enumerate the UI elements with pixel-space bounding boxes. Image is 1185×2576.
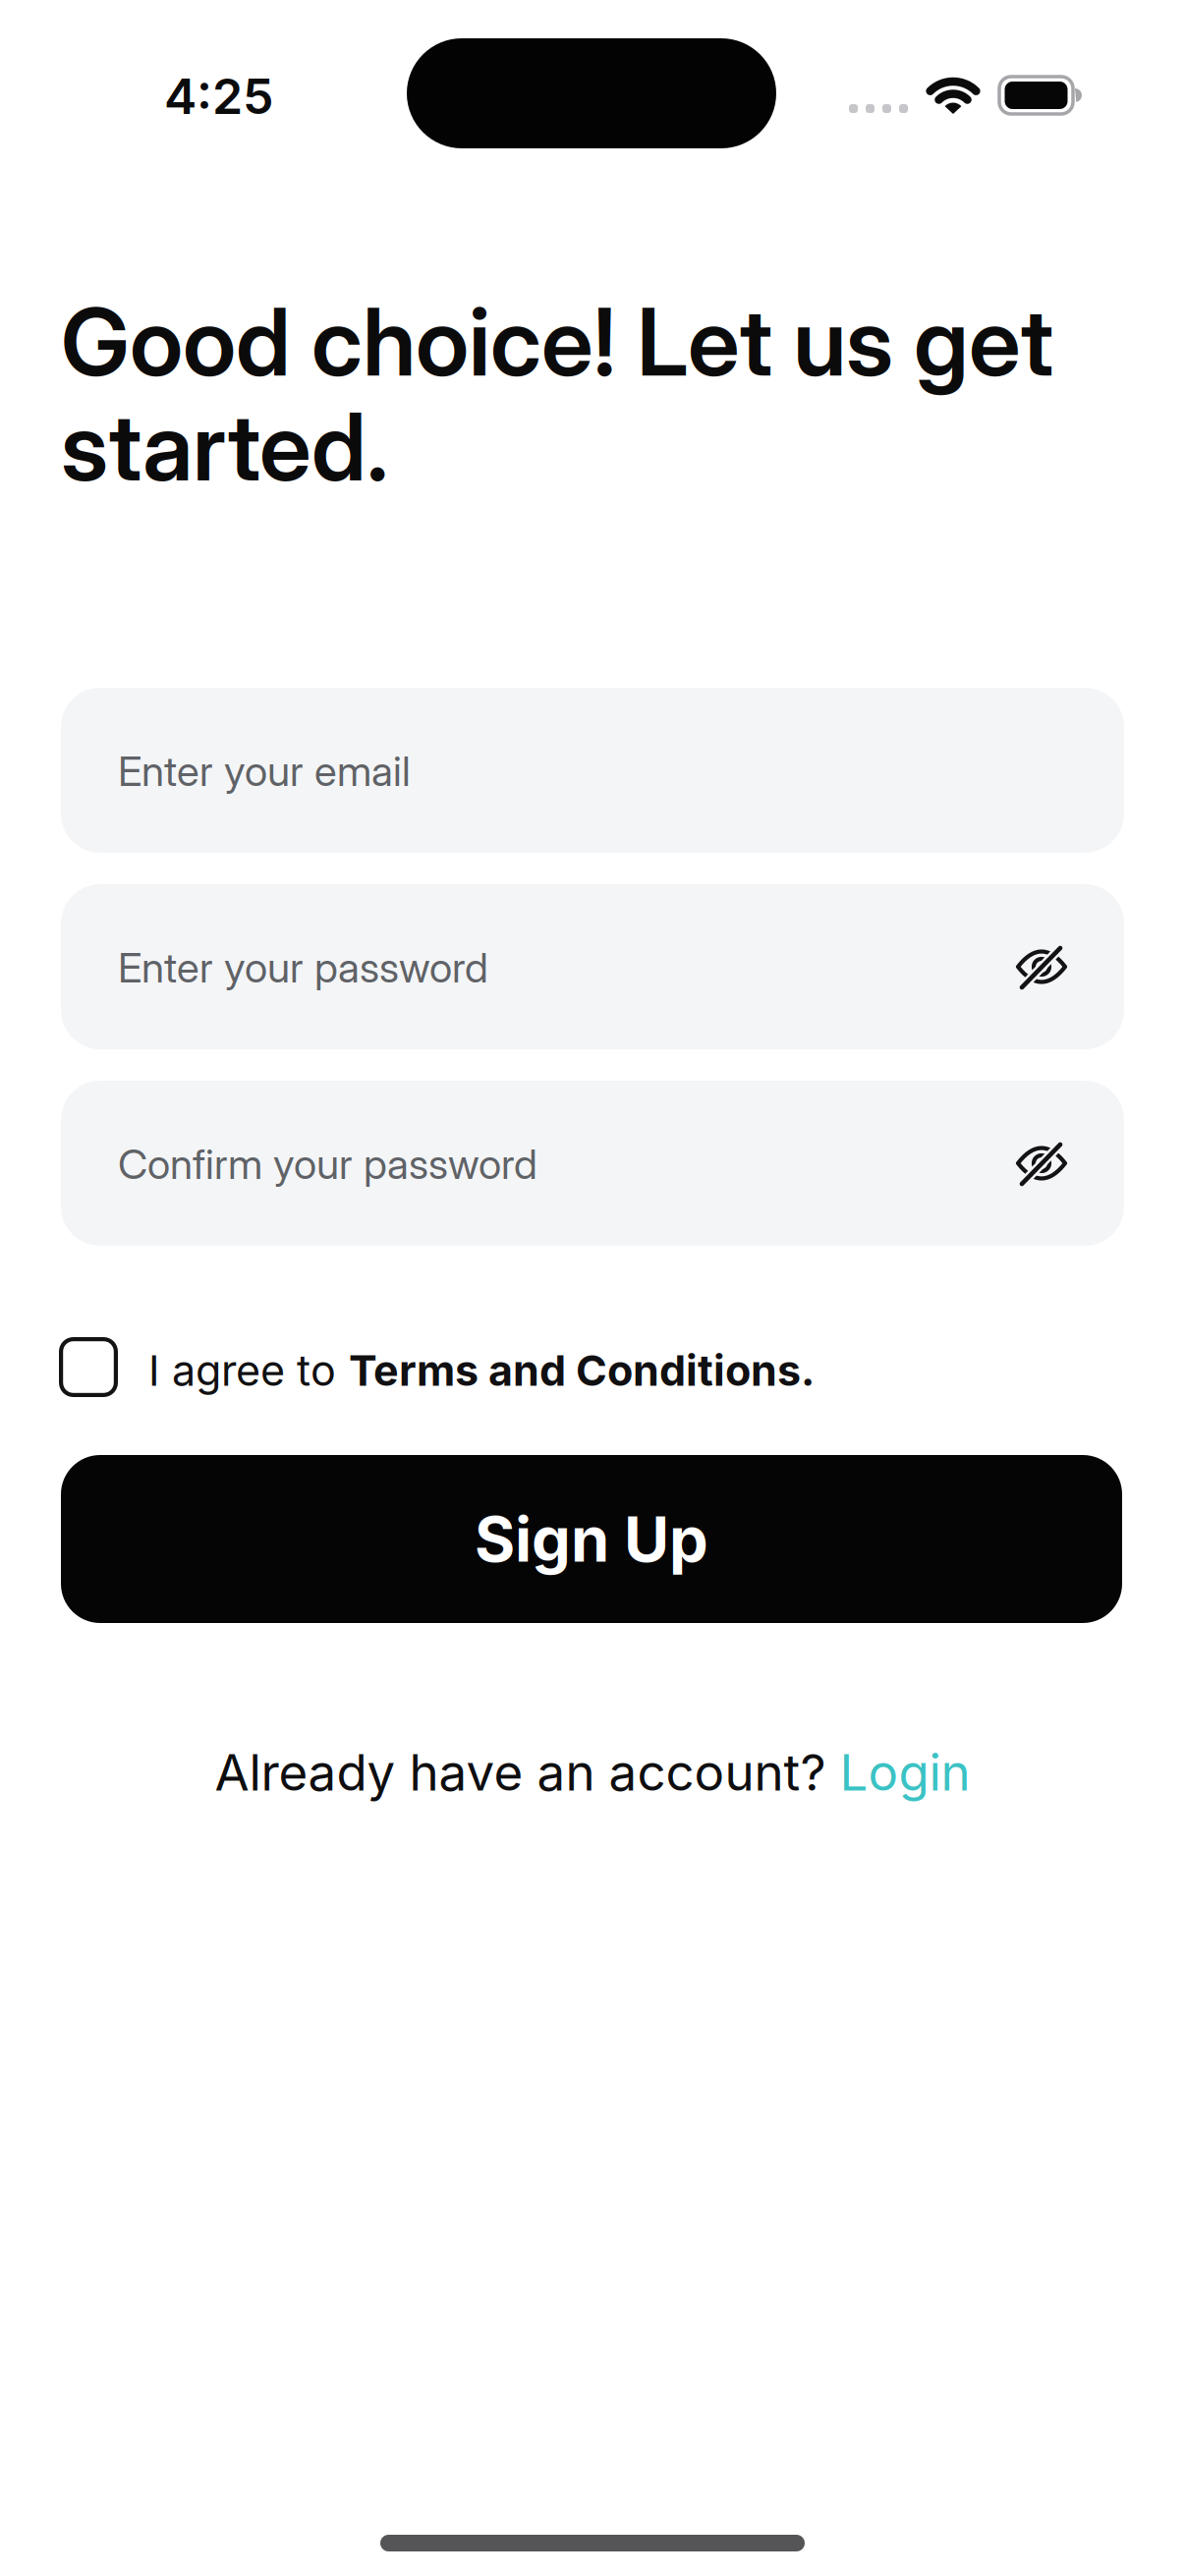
staticText: Enter your password [118,942,488,992]
staticText: Good choice! Let us get [61,285,1053,398]
staticText: Already have an account? [215,1742,826,1803]
button[interactable]: Login [840,1742,970,1803]
button[interactable]: Sign Up [61,1455,1122,1623]
button[interactable]: Show password [1012,1138,1071,1189]
staticText: Confirm your password [118,1139,537,1189]
staticText: Terms and Conditions. [349,1345,815,1396]
staticText: started. [61,390,388,503]
staticText: Enter your email [118,746,411,796]
staticText: 4:25 [164,66,273,126]
button[interactable]: Enter your email [61,688,1124,853]
button[interactable]: Terms and Conditions. [349,1345,815,1396]
button[interactable]: Confirm your password [61,1081,1124,1246]
button[interactable]: Enter your password [61,884,1124,1049]
staticText: Login [840,1742,970,1803]
button[interactable]: Show password [1012,941,1071,992]
staticText: I agree to [148,1345,336,1396]
button[interactable]: Agree to Terms and Conditions [59,1337,118,1397]
staticText: Sign Up [475,1502,708,1576]
